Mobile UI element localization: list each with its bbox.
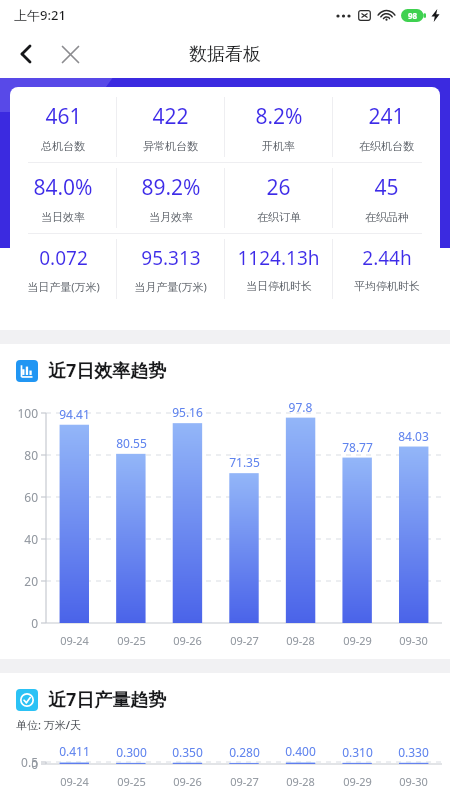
staticText: 09-26	[159, 774, 216, 789]
staticText: 0.400	[272, 743, 329, 759]
staticText: 总机台数	[41, 139, 85, 153]
staticText: 近7日效率趋势	[48, 358, 167, 383]
staticText: 2.44h	[362, 245, 412, 271]
button[interactable]: Close	[48, 32, 92, 76]
staticText: 09-24	[46, 633, 103, 648]
staticText: 20	[0, 573, 38, 589]
staticText: 78.77	[329, 439, 386, 455]
button[interactable]: 2.44h	[333, 234, 440, 304]
staticText: 71.35	[216, 454, 273, 470]
staticText: 95.313	[141, 245, 201, 271]
staticText: 09-28	[272, 774, 329, 789]
staticText: 89.2%	[141, 173, 201, 202]
staticText: 60	[0, 489, 38, 505]
staticText: 97.8	[272, 399, 329, 415]
staticText: 0	[0, 615, 38, 631]
staticText: 0.330	[385, 744, 442, 760]
staticText: 09-30	[385, 633, 442, 648]
staticText: 0.411	[46, 743, 103, 759]
button[interactable]: 26	[225, 163, 332, 233]
button[interactable]: Back	[4, 32, 48, 76]
staticText: 0.350	[159, 744, 216, 760]
staticText: 422	[152, 102, 189, 131]
button[interactable]: 近7日效率趋势	[16, 358, 450, 383]
staticText: 80	[0, 447, 38, 463]
button[interactable]: 241	[333, 92, 440, 162]
button[interactable]: 1124.13h	[225, 234, 332, 304]
staticText: 461	[45, 102, 82, 131]
staticText: 0.280	[216, 744, 273, 760]
staticText: 40	[0, 531, 38, 547]
staticText: 80.55	[103, 435, 160, 451]
staticText: 09-25	[103, 633, 160, 648]
staticText: 异常机台数	[143, 139, 198, 153]
staticText: 09-28	[272, 633, 329, 648]
button[interactable]: 近7日产量趋势	[16, 687, 450, 712]
staticText: 09-29	[329, 633, 386, 648]
button[interactable]: 422	[117, 92, 224, 162]
staticText: 09-26	[159, 633, 216, 648]
staticText: 09-29	[329, 774, 386, 789]
staticText: 1124.13h	[237, 245, 320, 271]
staticText: 45	[374, 173, 399, 202]
staticText: 84.03	[385, 428, 442, 444]
staticText: 100	[0, 405, 38, 421]
button[interactable]: 461	[10, 92, 116, 162]
staticText: 在织品种	[365, 210, 409, 224]
staticText: 近7日产量趋势	[48, 687, 167, 712]
staticText: 当月效率	[149, 210, 193, 224]
button[interactable]: 0.072	[10, 234, 116, 304]
staticText: 09-24	[46, 774, 103, 789]
staticText: 单位: 万米/天	[16, 717, 82, 732]
staticText: 84.0%	[33, 173, 93, 202]
staticText: 26	[266, 173, 291, 202]
staticText: 当日停机时长	[246, 279, 312, 293]
staticText: 上午9:21	[14, 6, 66, 24]
staticText: 09-30	[385, 774, 442, 789]
staticText: 平均停机时长	[354, 279, 420, 293]
staticText: 0.310	[329, 744, 386, 760]
staticText: 0.072	[39, 245, 88, 271]
button[interactable]: 84.0%	[10, 163, 116, 233]
staticText: 0	[0, 756, 38, 772]
button[interactable]: 89.2%	[117, 163, 224, 233]
staticText: 95.16	[159, 404, 216, 420]
button[interactable]: 45	[333, 163, 440, 233]
staticText: 开机率	[262, 139, 295, 153]
staticText: 在织机台数	[359, 139, 414, 153]
staticText: 0.5	[0, 754, 38, 770]
staticText: 94.41	[46, 406, 103, 422]
staticText: 在织订单	[257, 210, 301, 224]
staticText: 8.2%	[255, 102, 303, 131]
staticText: 当月产量(万米)	[134, 279, 207, 294]
staticText: 当日效率	[41, 210, 85, 224]
staticText: 98	[408, 10, 418, 21]
button[interactable]: 8.2%	[225, 92, 332, 162]
staticText: 241	[368, 102, 405, 131]
staticText: 09-25	[103, 774, 160, 789]
staticText: 0.300	[103, 744, 160, 760]
staticText: 数据看板	[189, 43, 261, 66]
staticText: 09-27	[216, 633, 273, 648]
button[interactable]: 95.313	[117, 234, 224, 304]
staticText: 09-27	[216, 774, 273, 789]
staticText: 当日产量(万米)	[27, 279, 100, 294]
